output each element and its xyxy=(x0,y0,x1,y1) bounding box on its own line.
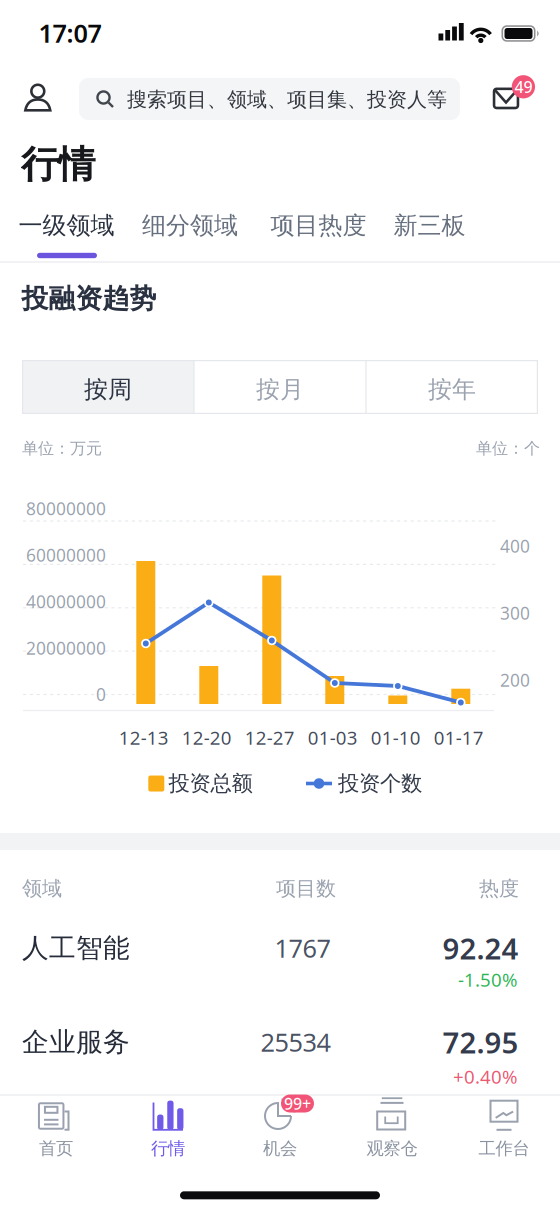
button[interactable]: 99+ xyxy=(225,1096,335,1158)
staticText: 细分领域 xyxy=(142,211,238,240)
staticText: 投资总额 xyxy=(168,770,252,797)
button[interactable]: 按周 xyxy=(22,360,194,414)
staticText: 92.24 xyxy=(442,928,518,967)
staticText: 60000000 xyxy=(26,543,106,566)
staticText: 72.95 xyxy=(442,1022,518,1061)
staticText: 工作台 xyxy=(478,1138,529,1159)
staticText: 热度 xyxy=(479,876,519,901)
button[interactable]: 行情 xyxy=(113,1096,223,1158)
button[interactable]: 新三板 xyxy=(379,200,479,250)
staticText: 单位：万元 xyxy=(22,439,102,458)
staticText: 领域 xyxy=(22,876,62,901)
button[interactable]: 个人中心 xyxy=(17,78,61,126)
staticText: 99+ xyxy=(284,1093,311,1114)
staticText: 80000000 xyxy=(26,497,106,520)
staticText: 按周 xyxy=(84,375,132,404)
staticText: 01-10 xyxy=(371,725,421,750)
staticText: 投资个数 xyxy=(338,770,422,797)
staticText: 机会 xyxy=(263,1138,297,1159)
staticText: 搜索项目、领域、项目集、投资人等 xyxy=(127,87,447,112)
staticText: 人工智能 xyxy=(22,932,130,964)
staticText: 项目数 xyxy=(276,876,336,901)
staticText: 首页 xyxy=(39,1138,73,1159)
staticText: 20000000 xyxy=(26,636,106,659)
staticText: 观察仓 xyxy=(366,1138,417,1159)
staticText: 按月 xyxy=(256,375,304,404)
staticText: 01-17 xyxy=(434,725,484,750)
staticText: -1.50% xyxy=(458,967,518,992)
staticText: 按年 xyxy=(428,375,476,404)
staticText: 400 xyxy=(500,534,530,557)
staticText: 01-03 xyxy=(308,725,358,750)
button[interactable]: 搜索项目、领域、项目集、投资人等 xyxy=(79,78,460,120)
staticText: 一级领域 xyxy=(18,211,114,240)
button[interactable]: 工作台 xyxy=(449,1096,559,1158)
staticText: 行情 xyxy=(21,142,95,187)
button[interactable]: 一级领域 xyxy=(6,200,126,250)
staticText: 企业服务 xyxy=(22,1026,130,1058)
staticText: 40000000 xyxy=(26,590,106,613)
staticText: 12-27 xyxy=(245,725,295,750)
button[interactable]: 项目热度 xyxy=(258,200,378,250)
staticText: 投融资趋势 xyxy=(21,282,156,315)
staticText: 300 xyxy=(500,601,530,624)
button[interactable]: 人工智能 xyxy=(0,905,560,1001)
staticText: 单位：个 xyxy=(476,439,540,458)
button[interactable]: 消息 xyxy=(486,71,538,121)
button[interactable]: 按年 xyxy=(366,360,538,414)
staticText: +0.40% xyxy=(453,1064,518,1089)
staticText: 新三板 xyxy=(393,211,465,240)
staticText: 12-20 xyxy=(182,725,232,750)
staticText: 0 xyxy=(96,683,106,706)
button[interactable]: 观察仓 xyxy=(337,1096,447,1158)
button[interactable]: 企业服务 xyxy=(0,1005,560,1093)
staticText: 25534 xyxy=(260,1025,330,1059)
staticText: 17:07 xyxy=(38,16,101,50)
staticText: 项目热度 xyxy=(270,211,366,240)
button[interactable]: 按月 xyxy=(194,360,366,414)
staticText: 200 xyxy=(500,668,530,691)
staticText: 行情 xyxy=(151,1138,185,1159)
button[interactable]: 细分领域 xyxy=(130,200,250,250)
staticText: 49 xyxy=(514,76,532,97)
staticText: 12-13 xyxy=(119,725,169,750)
staticText: 1767 xyxy=(274,931,330,965)
button[interactable]: 首页 xyxy=(1,1096,111,1158)
